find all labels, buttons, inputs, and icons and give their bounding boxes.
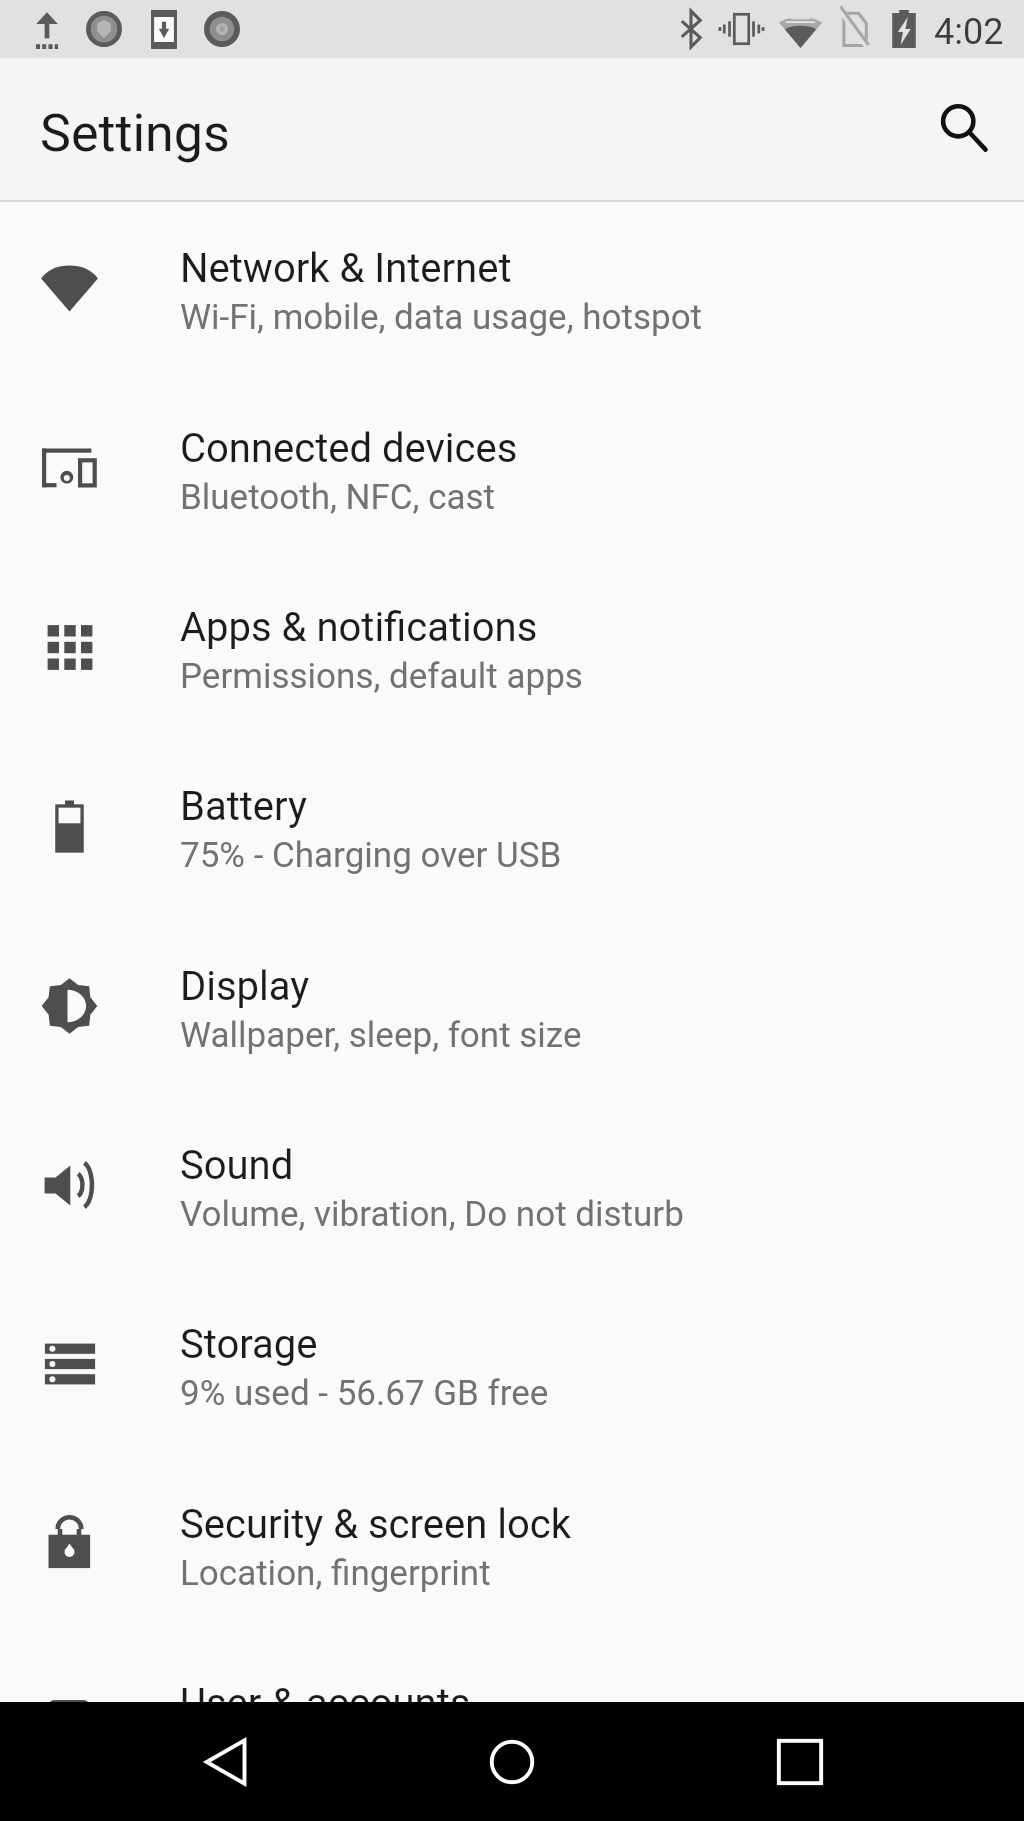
staticText: Battery: [180, 783, 307, 830]
staticText: Connected devices: [180, 425, 518, 472]
button[interactable]: Search: [922, 86, 1006, 170]
staticText: User & accounts: [180, 1680, 471, 1727]
staticText: Current user: Owner: [180, 1732, 489, 1773]
button[interactable]: Connected devices: [0, 368, 1024, 547]
staticText: Sound: [180, 1142, 294, 1189]
button[interactable]: Recents: [744, 1706, 856, 1818]
button[interactable]: Apps & notifications: [0, 547, 1024, 726]
button[interactable]: Display: [0, 906, 1024, 1085]
staticText: Permissions, default apps: [180, 656, 583, 697]
staticText: Security & screen lock: [180, 1501, 571, 1548]
button[interactable]: Security & screen lock: [0, 1444, 1024, 1623]
staticText: Wi-Fi, mobile, data usage, hotspot: [180, 297, 703, 338]
staticText: Volume, vibration, Do not disturb: [180, 1194, 684, 1235]
button[interactable]: Network & Internet: [0, 188, 1024, 367]
button[interactable]: User & accounts: [0, 1623, 1024, 1802]
staticText: Location, fingerprint: [180, 1553, 491, 1594]
button[interactable]: Sound: [0, 1085, 1024, 1264]
staticText: Apps & notifications: [180, 604, 538, 651]
staticText: Settings: [40, 103, 230, 164]
staticText: Wallpaper, sleep, font size: [180, 1015, 582, 1056]
staticText: 75% - Charging over USB: [180, 835, 562, 876]
button[interactable]: Back: [171, 1706, 283, 1818]
button[interactable]: Storage: [0, 1264, 1024, 1443]
staticText: Network & Internet: [180, 245, 512, 292]
staticText: Bluetooth, NFC, cast: [180, 477, 496, 518]
button[interactable]: Home: [456, 1706, 568, 1818]
button[interactable]: Battery: [0, 726, 1024, 905]
staticText: 9% used - 56.67 GB free: [180, 1373, 549, 1414]
staticText: 4:02: [934, 11, 1004, 53]
staticText: Display: [180, 963, 310, 1010]
staticText: Storage: [180, 1321, 318, 1368]
